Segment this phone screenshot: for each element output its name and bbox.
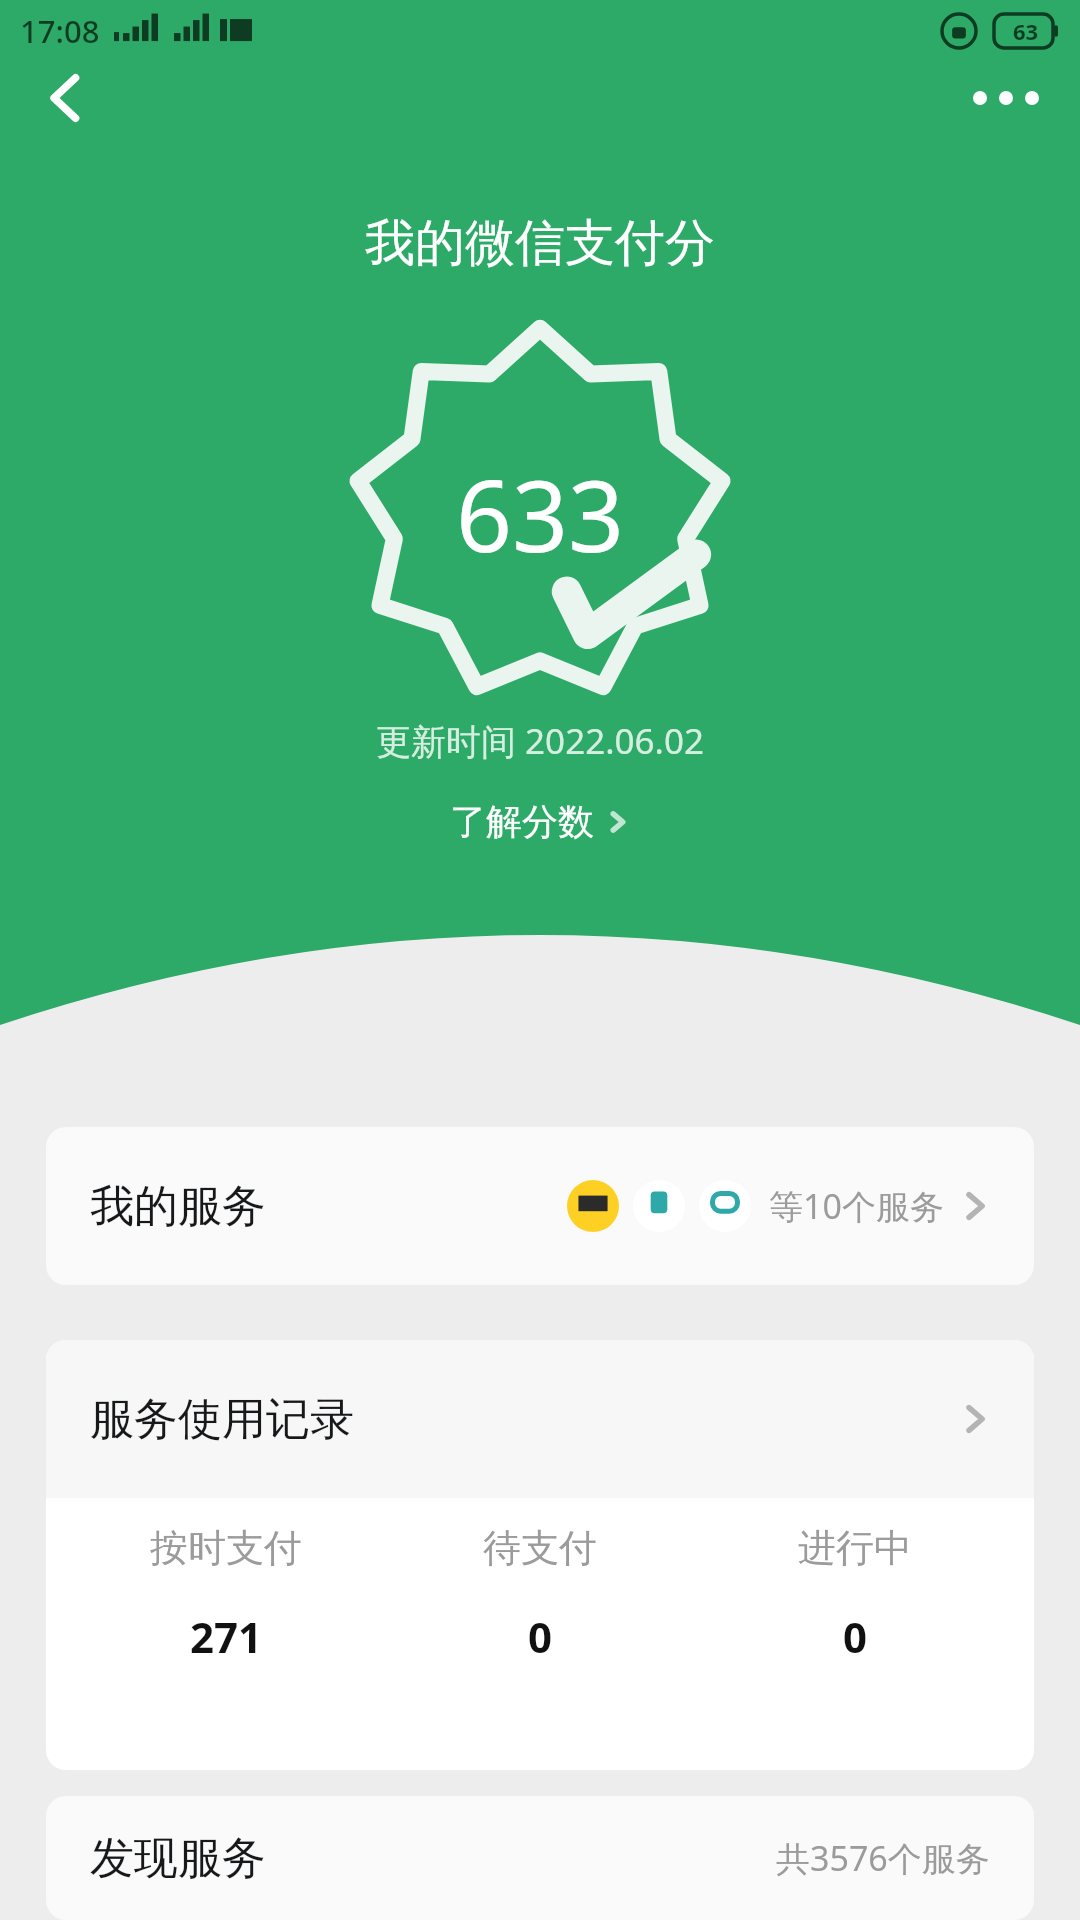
button[interactable]: Back <box>16 48 116 148</box>
button[interactable]: 了解分数 <box>434 793 646 850</box>
staticText: 发现服务 <box>90 1831 266 1886</box>
staticText: 我的服务 <box>90 1179 266 1234</box>
staticText: 按时支付 <box>150 1524 302 1572</box>
staticText: 服务使用记录 <box>90 1392 354 1447</box>
button[interactable]: 我的服务 <box>46 1127 1034 1285</box>
staticText: 待支付 <box>483 1524 597 1572</box>
staticText: 17:08 <box>20 10 100 52</box>
staticText: 63 <box>1013 16 1039 46</box>
staticText: 271 <box>190 1608 263 1665</box>
staticText: 0 <box>843 1608 868 1665</box>
staticText: 共3576个服务 <box>776 1835 990 1881</box>
staticText: 进行中 <box>798 1524 912 1572</box>
button[interactable]: 发现服务 <box>46 1796 1034 1920</box>
button[interactable]: 进行中 <box>720 1524 990 1665</box>
staticText: 等10个服务 <box>769 1183 944 1229</box>
staticText: 了解分数 <box>450 799 594 844</box>
staticText: 更新时间 2022.06.02 <box>376 717 705 765</box>
button[interactable]: 按时支付 <box>91 1524 361 1665</box>
staticText: 0 <box>528 1608 553 1665</box>
button[interactable]: 待支付 <box>405 1524 675 1665</box>
button[interactable]: 服务使用记录 <box>46 1340 1034 1498</box>
button[interactable]: More options <box>956 48 1056 148</box>
staticText: 633 <box>456 447 625 580</box>
staticText: 我的微信支付分 <box>365 212 715 275</box>
